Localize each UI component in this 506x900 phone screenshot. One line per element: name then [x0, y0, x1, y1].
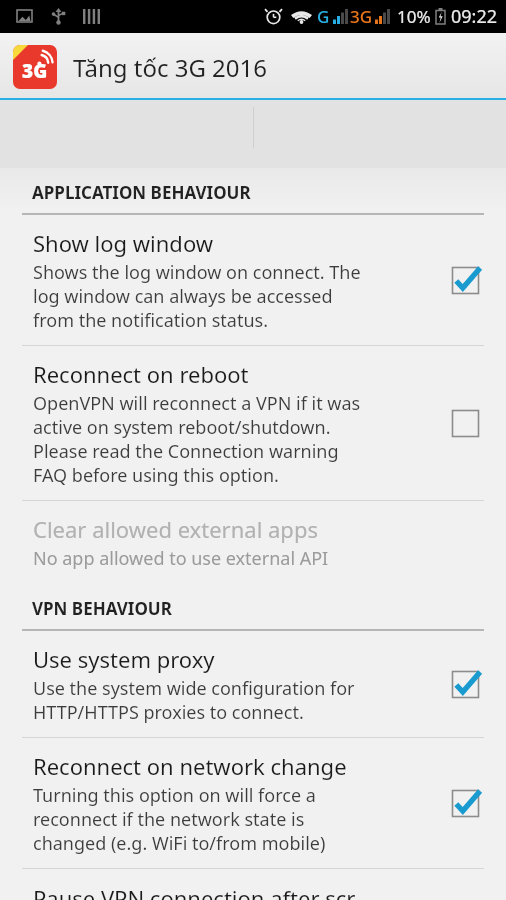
staticText: OpenVPN will reconnect a VPN if it was a…	[33, 391, 361, 487]
button[interactable]: Show log window	[0, 215, 506, 345]
staticText: Clear allowed external apps	[33, 514, 318, 544]
staticText: Reconnect on reboot	[33, 359, 249, 389]
staticText: G	[317, 5, 330, 28]
button[interactable]: Reconnect on network change	[444, 782, 486, 824]
staticText: Use the system wide configuration for HT…	[33, 676, 355, 724]
staticText: Show log window	[33, 228, 214, 258]
staticText: 10%	[397, 5, 431, 28]
button[interactable]: Reconnect on reboot	[0, 346, 506, 500]
staticText: Use system proxy	[33, 644, 215, 674]
button[interactable]: Reconnect on reboot	[444, 402, 486, 444]
staticText: 3G	[22, 58, 48, 84]
staticText: APPLICATION BEHAVIOUR	[32, 181, 251, 204]
staticText: 3G	[350, 5, 373, 28]
staticText: Tăng tốc 3G 2016	[73, 51, 268, 84]
button[interactable]: Show log window	[444, 259, 486, 301]
button[interactable]: Clear allowed external apps	[0, 501, 506, 584]
staticText: Pause VPN connection after scr	[33, 883, 356, 900]
staticText: Reconnect on network change	[33, 751, 347, 781]
button[interactable]: Reconnect on network change	[0, 738, 506, 868]
staticText: 09:22	[451, 4, 498, 29]
staticText: No app allowed to use external API	[33, 546, 329, 571]
staticText: VPN BEHAVIOUR	[32, 597, 172, 620]
button[interactable]: Use system proxy	[0, 631, 506, 737]
staticText: Shows the log window on connect. The log…	[33, 260, 361, 332]
staticText: Turning this option on will force a reco…	[33, 783, 326, 855]
button[interactable]: Pause VPN connection after scr	[0, 869, 506, 900]
button[interactable]: Use system proxy	[444, 663, 486, 705]
